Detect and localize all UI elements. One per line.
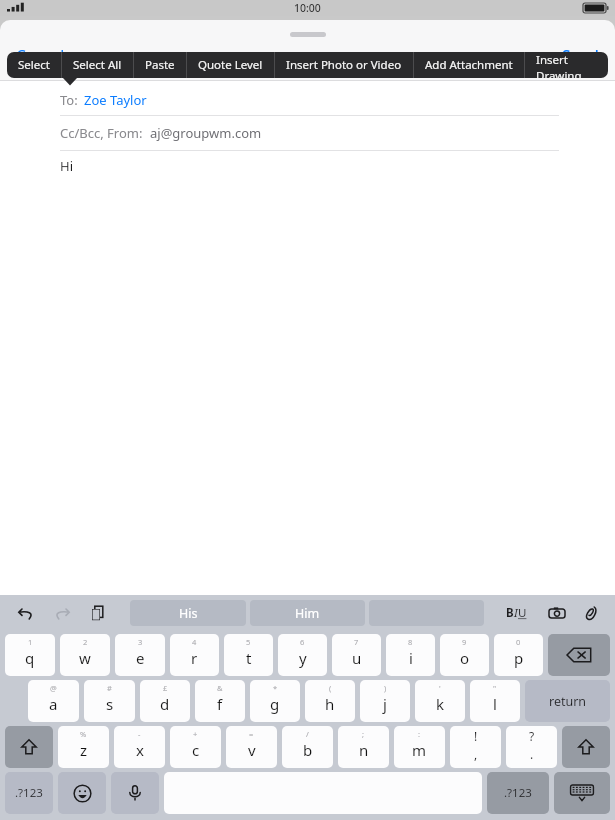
button[interactable]: - <box>114 726 165 768</box>
button[interactable]: 1 <box>5 634 55 676</box>
button[interactable]: Select <box>7 52 61 78</box>
button[interactable]: Emoji <box>58 772 106 814</box>
button[interactable]: " <box>470 680 520 722</box>
button[interactable]: Attach <box>579 601 603 625</box>
staticText: n <box>359 740 369 760</box>
staticText: B <box>506 605 514 621</box>
button[interactable]: Undo <box>14 601 38 625</box>
button[interactable]: / <box>282 726 333 768</box>
staticText: 2 <box>83 637 88 647</box>
staticText: t <box>246 648 252 668</box>
button[interactable]: 9 <box>440 634 489 676</box>
staticText: k <box>436 694 445 714</box>
button[interactable]: £ <box>140 680 190 722</box>
button[interactable]: ( <box>305 680 355 722</box>
button[interactable]: Cc/Bcc, From: <box>0 116 615 150</box>
button[interactable]: .?123 <box>5 772 53 814</box>
button[interactable]: ? <box>506 726 557 768</box>
button[interactable]: 7 <box>332 634 381 676</box>
staticText: i <box>409 648 413 668</box>
button[interactable]: 2 <box>60 634 110 676</box>
staticText: Zoe Taylor <box>84 91 147 109</box>
staticText: d <box>160 694 170 714</box>
button[interactable]: Numbers <box>487 772 549 814</box>
button[interactable]: Quote Level <box>187 52 274 78</box>
button[interactable]: Hide keyboard <box>554 772 610 814</box>
button[interactable]: # <box>84 680 135 722</box>
button[interactable]: 3 <box>115 634 165 676</box>
staticText: , <box>474 746 478 762</box>
staticText: 3 <box>138 637 143 647</box>
button[interactable]: ' <box>415 680 465 722</box>
staticText: Select <box>18 57 50 73</box>
staticText: % <box>80 729 87 739</box>
button[interactable]: 6 <box>278 634 327 676</box>
button[interactable]: % <box>58 726 109 768</box>
button[interactable]: = <box>226 726 277 768</box>
button[interactable]: : <box>394 726 445 768</box>
staticText: c <box>192 740 200 760</box>
button[interactable]: Insert Drawing <box>525 52 608 78</box>
staticText: o <box>460 648 470 668</box>
button[interactable]: Select All <box>62 52 133 78</box>
button[interactable]: + <box>170 726 221 768</box>
staticText: 8 <box>408 637 413 647</box>
staticText: e <box>136 648 145 668</box>
staticText: x <box>136 740 144 760</box>
staticText: : <box>418 729 421 739</box>
staticText: ' <box>439 683 441 693</box>
button[interactable]: @ <box>28 680 79 722</box>
staticText: y <box>299 648 307 668</box>
staticText: " <box>493 683 497 693</box>
staticText: Cc/Bcc, From: <box>60 124 143 142</box>
button[interactable]: Send <box>554 39 607 72</box>
button[interactable]: ) <box>360 680 410 722</box>
button[interactable]: Redo <box>50 601 74 625</box>
staticText: r <box>191 648 198 668</box>
button[interactable]: ; <box>338 726 389 768</box>
staticText: s <box>106 694 114 714</box>
button[interactable]: Him <box>250 600 365 626</box>
button[interactable]: Paste <box>86 601 110 625</box>
button[interactable]: return <box>525 680 610 722</box>
button[interactable]: Cancel <box>8 39 73 72</box>
staticText: h <box>325 694 335 714</box>
button[interactable]: 0 <box>494 634 543 676</box>
button[interactable]: 5 <box>224 634 273 676</box>
button[interactable]: ! <box>450 726 501 768</box>
staticText: Insert Photo or Video <box>286 57 402 73</box>
staticText: v <box>248 740 256 760</box>
staticText: 5 <box>246 637 251 647</box>
button[interactable]: Camera <box>545 601 569 625</box>
staticText: / <box>306 729 309 739</box>
staticText: To: <box>60 91 78 109</box>
staticText: z <box>80 740 88 760</box>
staticText: = <box>249 729 254 739</box>
staticText: 1 <box>28 637 33 647</box>
staticText: w <box>79 648 91 668</box>
button[interactable]: His <box>130 600 246 626</box>
button[interactable]: Dictate <box>111 772 159 814</box>
button[interactable]: Insert Photo or Video <box>275 52 413 78</box>
button[interactable]: 4 <box>170 634 219 676</box>
staticText: 7 <box>354 637 359 647</box>
staticText: f <box>217 694 223 714</box>
button[interactable]: 8 <box>386 634 435 676</box>
staticText: .?123 <box>504 785 532 801</box>
button[interactable]: Shift <box>562 726 610 768</box>
button[interactable]: Format <box>502 601 531 625</box>
button[interactable]: * <box>250 680 300 722</box>
button[interactable]: Add Attachment <box>414 52 524 78</box>
staticText: Him <box>295 605 320 622</box>
button[interactable]: Shift <box>5 726 53 768</box>
button[interactable]: To: <box>0 81 615 115</box>
staticText: + <box>193 729 198 739</box>
button[interactable]: Paste <box>134 52 186 78</box>
button[interactable]: & <box>195 680 245 722</box>
button[interactable]: Delete <box>548 634 610 676</box>
staticText: 0 <box>516 637 521 647</box>
staticText: ; <box>362 729 365 739</box>
staticText: & <box>217 683 223 693</box>
